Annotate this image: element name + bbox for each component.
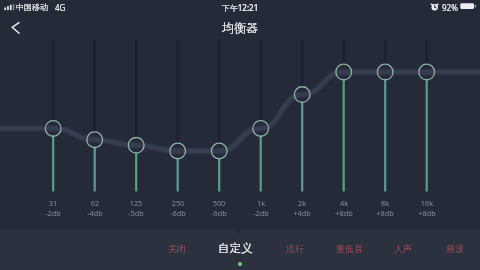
staticText: -2db	[33, 208, 73, 219]
button[interactable]: 重低音	[321, 239, 377, 257]
staticText: 中国移动	[16, 2, 48, 12]
staticText: 2k	[282, 198, 322, 209]
button[interactable]: 自定义	[207, 239, 263, 257]
staticText: -2db	[241, 208, 281, 219]
staticText: 92%	[442, 2, 458, 13]
staticText: +4db	[282, 208, 322, 219]
staticText: +8db	[324, 208, 364, 219]
button[interactable]: 流行	[267, 239, 323, 257]
button[interactable]: 人声	[375, 239, 431, 257]
staticText: -5db	[116, 208, 156, 219]
staticText: 摇滚	[446, 243, 464, 254]
staticText: 31	[33, 198, 73, 209]
staticText: 4G	[55, 2, 66, 13]
staticText: 人声	[394, 243, 412, 254]
button[interactable]: 关闭	[149, 239, 205, 257]
staticText: 62	[75, 198, 115, 209]
staticText: 125	[116, 198, 156, 209]
staticText: 关闭	[168, 243, 186, 254]
staticText: 8k	[365, 198, 405, 209]
staticText: +8db	[365, 208, 405, 219]
staticText: 4k	[324, 198, 364, 209]
staticText: 均衡器	[190, 20, 290, 40]
staticText: -6db	[199, 208, 239, 219]
button[interactable]: 摇滚	[427, 239, 480, 257]
staticText: 250	[158, 198, 198, 209]
staticText: 1k	[241, 198, 281, 209]
staticText: 重低音	[336, 243, 363, 254]
staticText: 流行	[286, 243, 304, 254]
staticText: 自定义	[218, 241, 253, 255]
staticText: -6db	[158, 208, 198, 219]
staticText: -4db	[75, 208, 115, 219]
button[interactable]: Back	[0, 16, 34, 40]
staticText: 500	[199, 198, 239, 209]
staticText: 下午12:21	[190, 2, 290, 14]
staticText: 16k	[407, 198, 447, 209]
staticText: +8db	[407, 208, 447, 219]
